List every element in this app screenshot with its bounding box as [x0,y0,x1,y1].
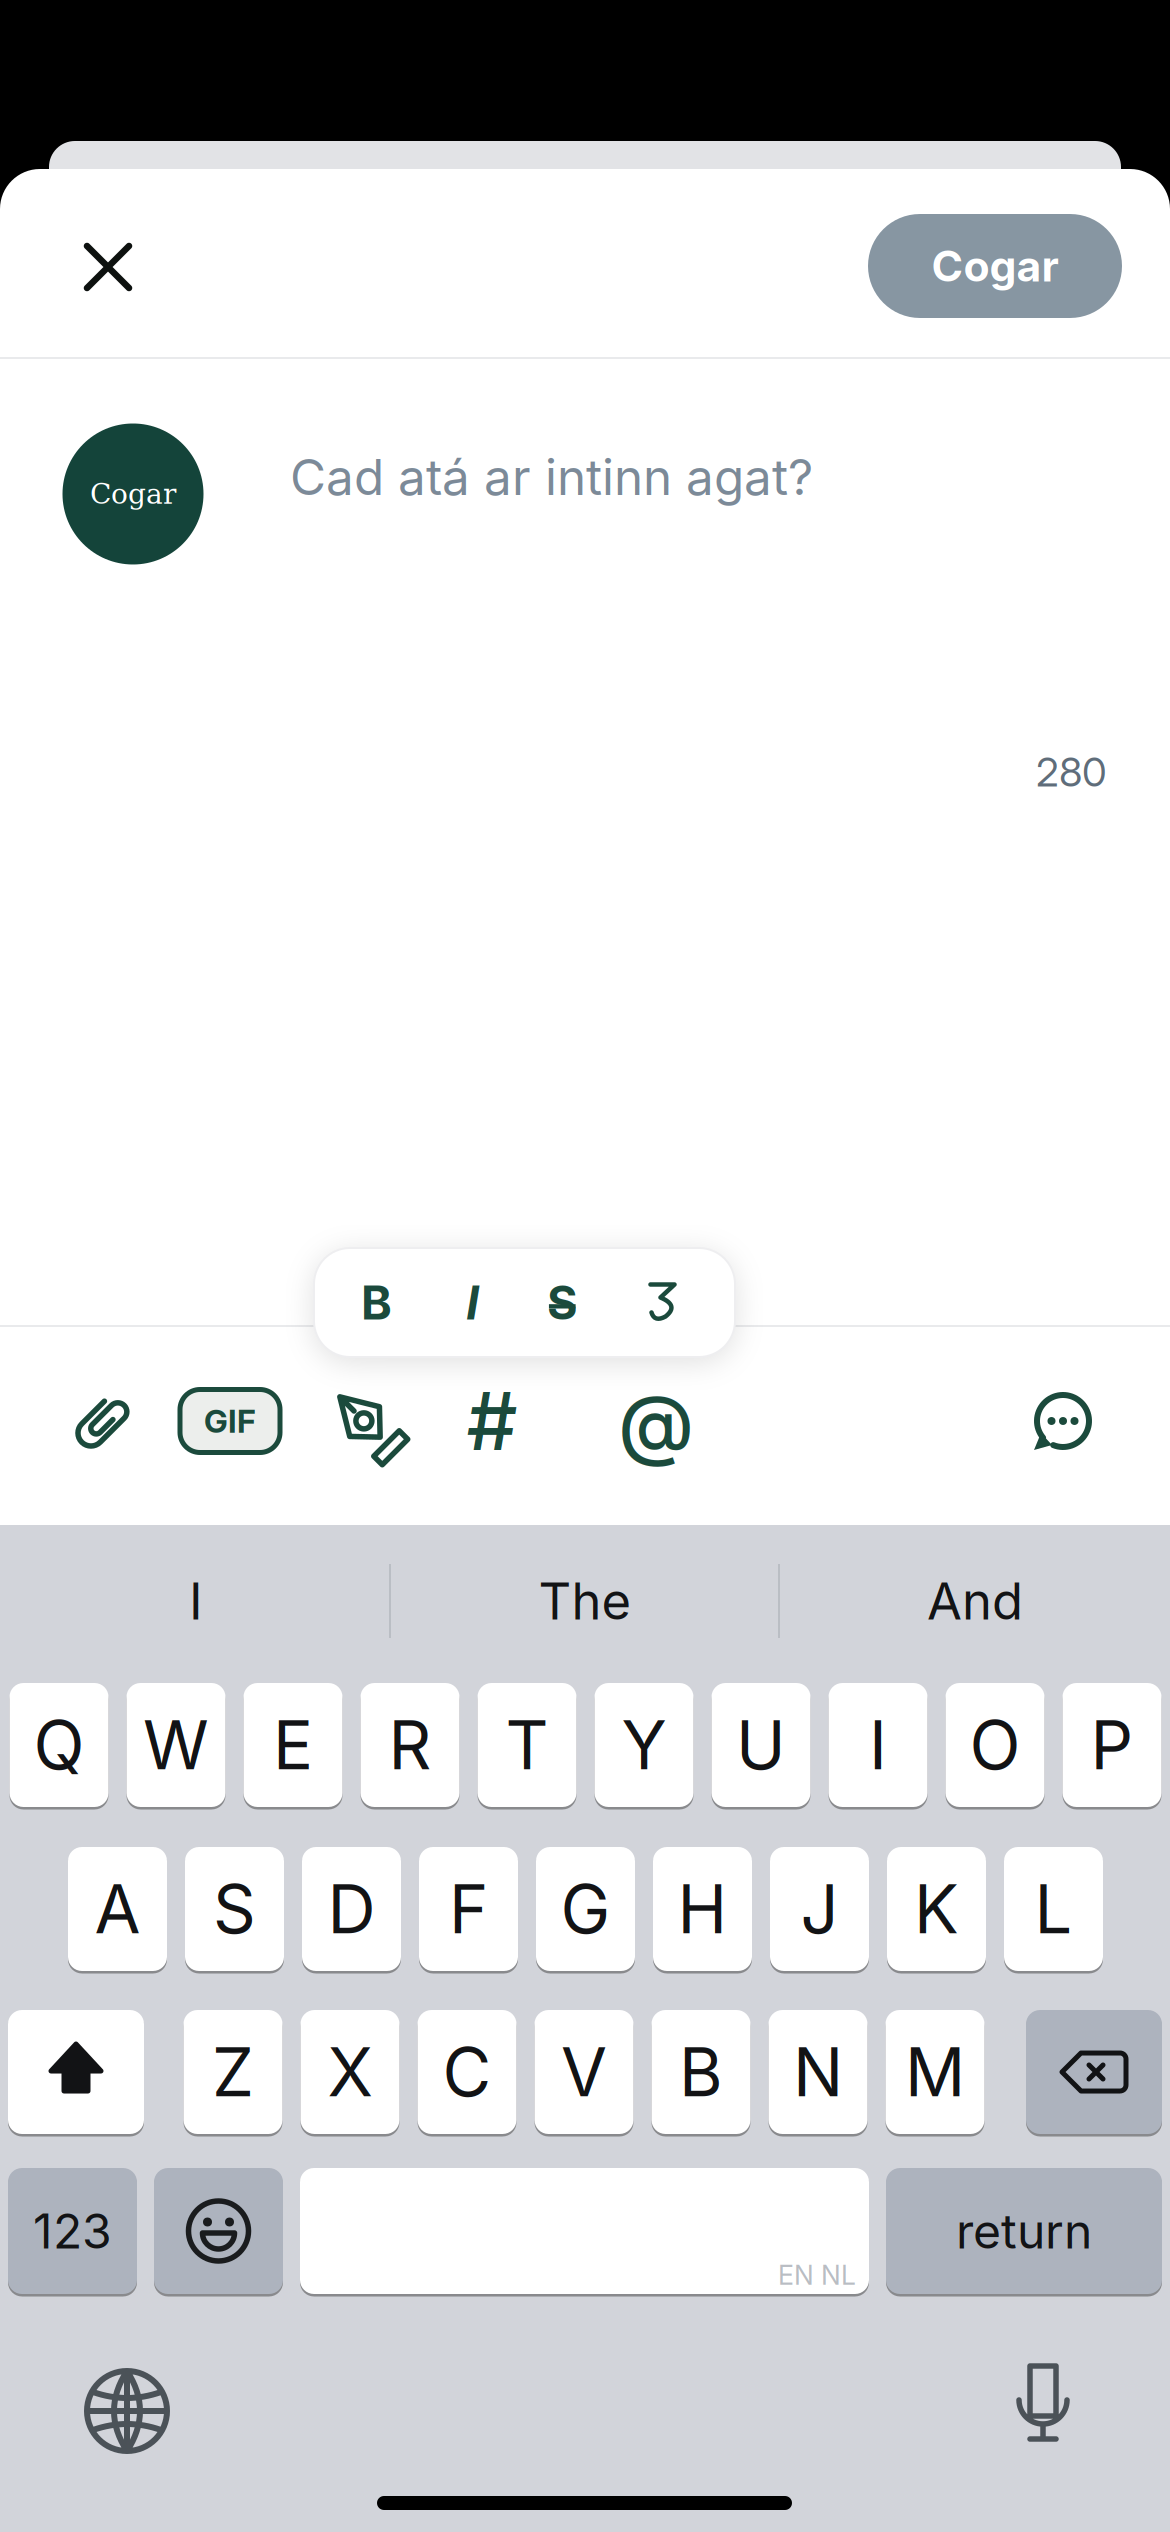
button[interactable]: L [1004,1847,1103,1971]
button[interactable]: B [651,2010,750,2134]
button[interactable]: P [1062,1683,1161,1807]
button[interactable]: Z [183,2010,282,2134]
staticText: P [1090,1706,1133,1784]
staticText: M [905,2033,965,2111]
staticText: T [505,1706,548,1784]
button[interactable]: J [770,1847,869,1971]
staticText: A [94,1870,140,1948]
button[interactable]: Dictation [996,2361,1090,2455]
staticText: F [449,1870,488,1948]
button[interactable]: N [768,2010,867,2134]
staticText: U [736,1706,786,1784]
staticText: H [677,1870,727,1948]
button[interactable]: F [419,1847,518,1971]
staticText: L [1034,1870,1072,1948]
button[interactable]: Y [594,1683,693,1807]
staticText: E [273,1706,313,1784]
staticText: J [800,1870,838,1948]
button[interactable]: The [405,1546,765,1656]
button[interactable]: T [477,1683,576,1807]
button[interactable]: Lua [606,1375,706,1471]
button[interactable]: Italic [432,1252,512,1352]
button[interactable]: A [68,1847,167,1971]
staticText: R [388,1706,431,1784]
button[interactable]: Strikethrough [522,1252,602,1352]
staticText: B [679,2033,723,2111]
staticText: B [361,1275,392,1330]
staticText: Y [621,1706,666,1784]
button[interactable]: Shift [8,2010,144,2134]
staticText: 123 [33,2203,112,2259]
staticText: S [547,1275,578,1330]
staticText: O [969,1706,1020,1784]
staticText: @ [618,1377,694,1469]
staticText: # [466,1374,517,1468]
staticText: GIF [204,1402,256,1440]
button[interactable]: E [243,1683,342,1807]
staticText: EN NL [778,2259,856,2291]
button[interactable]: K [887,1847,986,1971]
button[interactable]: R [360,1683,459,1807]
button[interactable]: V [534,2010,633,2134]
staticText: D [327,1870,375,1948]
staticText: I [466,1275,479,1330]
button[interactable]: S [185,1847,284,1971]
button[interactable]: 123 [8,2168,137,2294]
staticText: 280 [1036,748,1107,796]
button[interactable]: Delete [1026,2010,1162,2134]
button[interactable]: D [302,1847,401,1971]
button[interactable]: U [711,1683,810,1807]
button[interactable]: Q [9,1683,108,1807]
button[interactable]: GIF [180,1389,280,1452]
button[interactable]: O [945,1683,1044,1807]
staticText: The [538,1571,631,1631]
button[interactable]: Haischlib [447,1376,537,1466]
staticText: Q [33,1706,84,1784]
staticText: Cogar [931,241,1058,291]
staticText: C [442,2033,491,2111]
staticText: V [561,2033,607,2111]
staticText: Z [212,2033,254,2111]
button[interactable]: Emoji [154,2168,283,2294]
staticText: W [143,1706,209,1784]
button[interactable]: Bold [336,1252,416,1352]
button[interactable]: X [300,2010,399,2134]
button[interactable]: G [536,1847,635,1971]
staticText: S [213,1870,256,1948]
staticText: I [189,1571,203,1631]
button[interactable]: C [417,2010,516,2134]
button[interactable]: And [795,1546,1155,1656]
staticText: Cad atá ar intinn agat? [290,448,813,506]
button[interactable]: Next keyboard [80,2364,174,2458]
button[interactable]: Freagraí [1023,1381,1103,1461]
button[interactable]: Space [300,2168,869,2294]
button[interactable]: I [16,1546,376,1656]
button[interactable]: Cogar [868,214,1122,318]
button[interactable]: Dún [66,225,150,309]
button[interactable]: Dréachtaí [318,1375,414,1471]
staticText: return [956,2203,1092,2259]
staticText: G [560,1870,610,1948]
staticText: And [927,1571,1023,1631]
button[interactable]: W [126,1683,225,1807]
staticText: N [793,2033,843,2111]
button[interactable]: M [885,2010,984,2134]
button[interactable]: I [828,1683,927,1807]
staticText: I [869,1706,887,1784]
staticText: X [327,2033,372,2111]
button[interactable]: H [653,1847,752,1971]
staticText: K [914,1870,959,1948]
button[interactable]: return [886,2168,1162,2294]
button[interactable]: Seanchló [622,1252,702,1352]
staticText: Cogar [90,478,176,510]
button[interactable]: Ceangaltán [60,1376,150,1466]
